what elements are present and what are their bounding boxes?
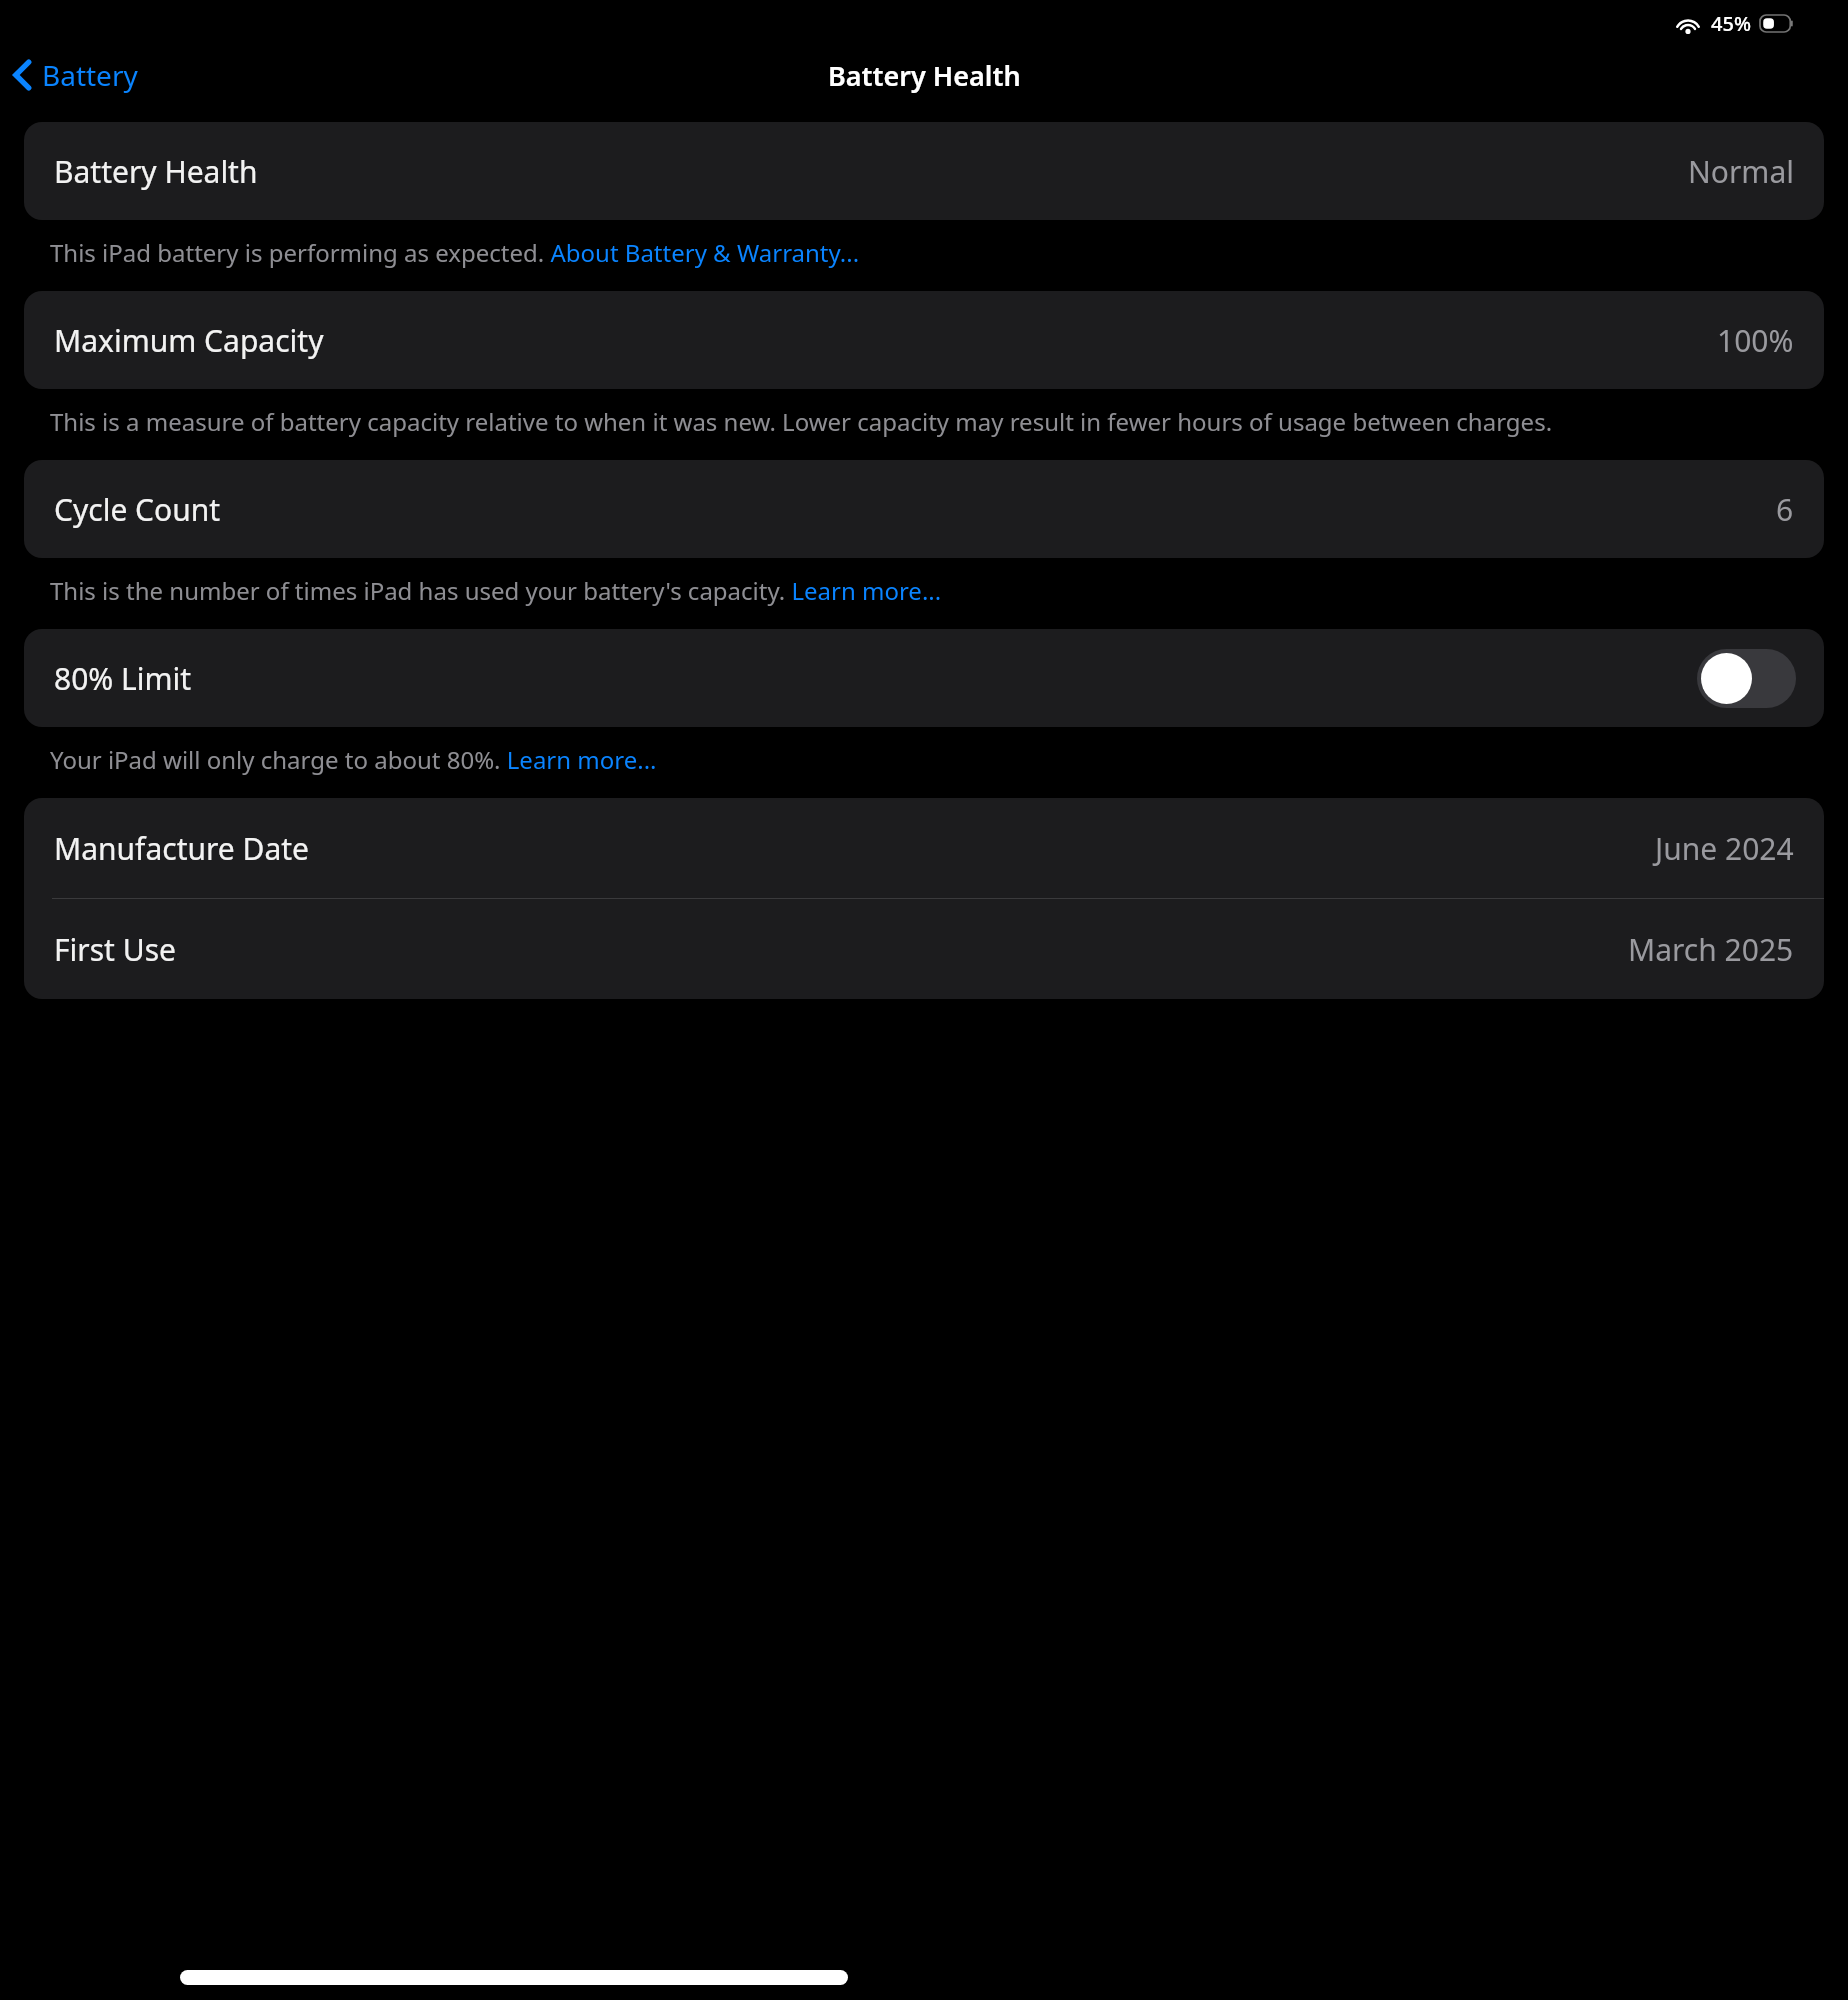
staticText: Battery Health <box>828 57 1021 94</box>
staticText: Cycle Count <box>54 489 221 530</box>
staticText: 45% <box>1711 10 1751 37</box>
staticText: This is the number of times iPad has use… <box>50 574 1784 607</box>
staticText: This iPad battery is performing as expec… <box>50 236 1784 269</box>
button[interactable]: 80% Limit <box>24 629 1824 727</box>
staticText: June 2024 <box>1655 828 1794 869</box>
button[interactable]: Battery Health <box>24 122 1824 220</box>
button[interactable]: Maximum Capacity <box>24 291 1824 389</box>
staticText: 100% <box>1717 320 1794 361</box>
staticText: First Use <box>54 929 176 970</box>
button[interactable]: 80% Limit toggle, off <box>1697 649 1796 708</box>
button[interactable]: First Use <box>24 899 1824 999</box>
staticText: Maximum Capacity <box>54 320 324 361</box>
staticText: Manufacture Date <box>54 828 310 869</box>
staticText: Normal <box>1688 151 1794 192</box>
staticText: Your iPad will only charge to about 80%.… <box>50 743 1784 776</box>
staticText: Battery <box>42 56 138 94</box>
staticText: 80% Limit <box>54 658 192 699</box>
staticText: 6 <box>1776 489 1794 530</box>
button[interactable]: Battery <box>8 52 144 98</box>
button[interactable]: Cycle Count <box>24 460 1824 558</box>
button[interactable]: Manufacture Date <box>24 798 1824 898</box>
staticText: Battery Health <box>54 151 258 192</box>
staticText: March 2025 <box>1628 929 1794 970</box>
staticText: This is a measure of battery capacity re… <box>50 405 1784 438</box>
